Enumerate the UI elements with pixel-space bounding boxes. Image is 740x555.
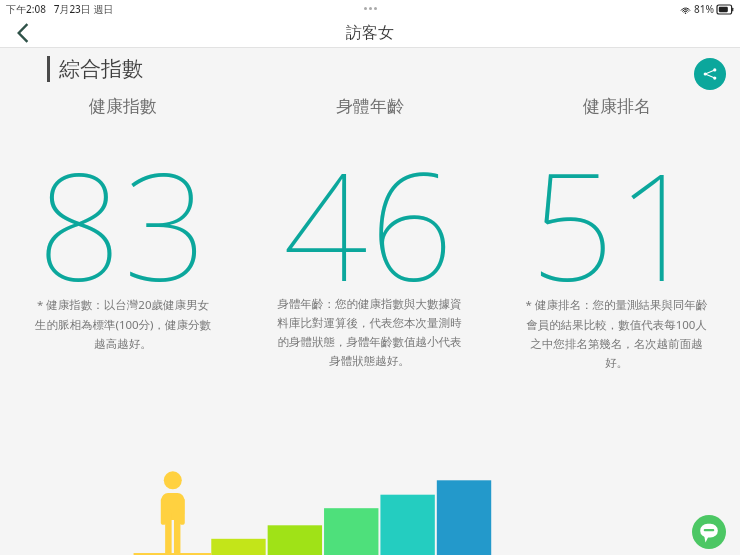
staticText: 綜合指數 bbox=[59, 56, 143, 82]
staticText: 健康排名 bbox=[583, 96, 651, 117]
staticText: 83 bbox=[37, 123, 210, 293]
button[interactable]: Share bbox=[694, 58, 726, 90]
staticText: 健康指數 bbox=[89, 96, 157, 117]
staticText: 訪客女 bbox=[346, 23, 394, 43]
staticText: * 健康指數：以台灣20歲健康男女生的脈相為標準(100分)，健康分數越高越好。 bbox=[34, 297, 212, 352]
staticText: 身體年齡：您的健康指數與大數據資料庫比對運算後，代表您本次量測時的身體狀態，身體… bbox=[276, 297, 463, 369]
staticText: 81% bbox=[694, 2, 714, 16]
staticText: 身體年齡 bbox=[336, 96, 404, 117]
staticText: 下午2:08 7月23日 週日 bbox=[6, 2, 114, 16]
staticText: * 健康排名：您的量測結果與同年齡會員的結果比較，數值代表每100人之中您排名第… bbox=[523, 297, 710, 371]
button[interactable]: Back bbox=[0, 18, 44, 48]
button[interactable]: Share to LINE bbox=[692, 515, 726, 549]
staticText: 46 bbox=[283, 123, 456, 293]
staticText: 51 bbox=[530, 123, 703, 293]
